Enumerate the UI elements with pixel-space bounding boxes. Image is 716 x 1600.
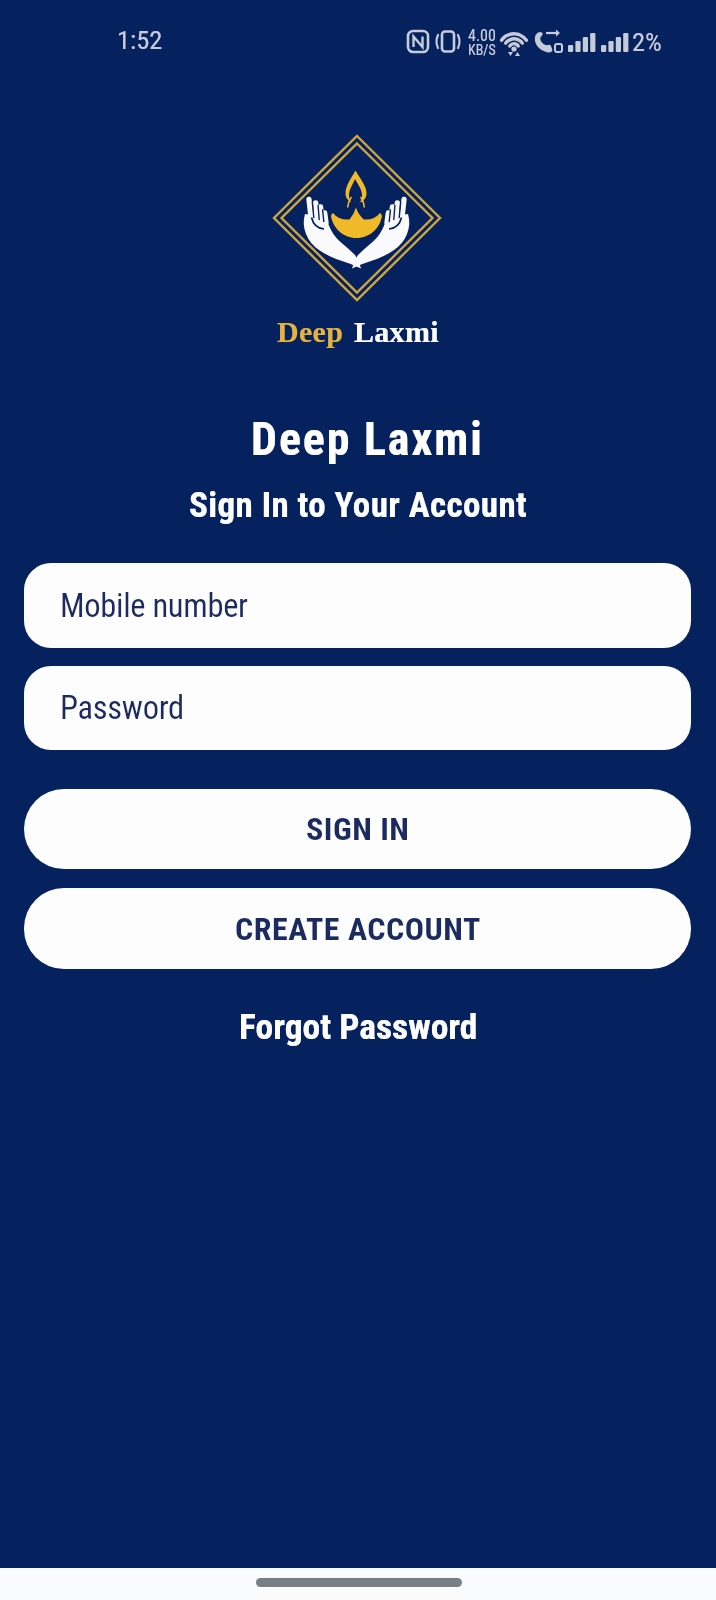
button[interactable]: Mobile number	[24, 563, 691, 648]
button[interactable]: Password	[24, 666, 691, 750]
button[interactable]: SIGN IN	[24, 789, 691, 869]
button[interactable]: Forgot Password	[239, 1006, 478, 1048]
staticText: Password	[60, 689, 184, 727]
staticText: KB/S	[468, 42, 496, 58]
staticText: 4.00	[468, 26, 496, 45]
staticText: Laxmi	[354, 315, 439, 348]
staticText: 2%	[632, 26, 662, 57]
staticText: Forgot Password	[239, 1006, 478, 1048]
staticText: Deep	[277, 315, 344, 348]
staticText: SIGN IN	[306, 810, 410, 848]
staticText: Mobile number	[60, 587, 248, 625]
button[interactable]: CREATE ACCOUNT	[24, 888, 691, 969]
staticText: 1:52	[117, 24, 163, 55]
staticText: Deep Laxmi	[251, 412, 484, 466]
staticText: CREATE ACCOUNT	[235, 910, 481, 948]
staticText: Sign In to Your Account	[189, 485, 528, 526]
